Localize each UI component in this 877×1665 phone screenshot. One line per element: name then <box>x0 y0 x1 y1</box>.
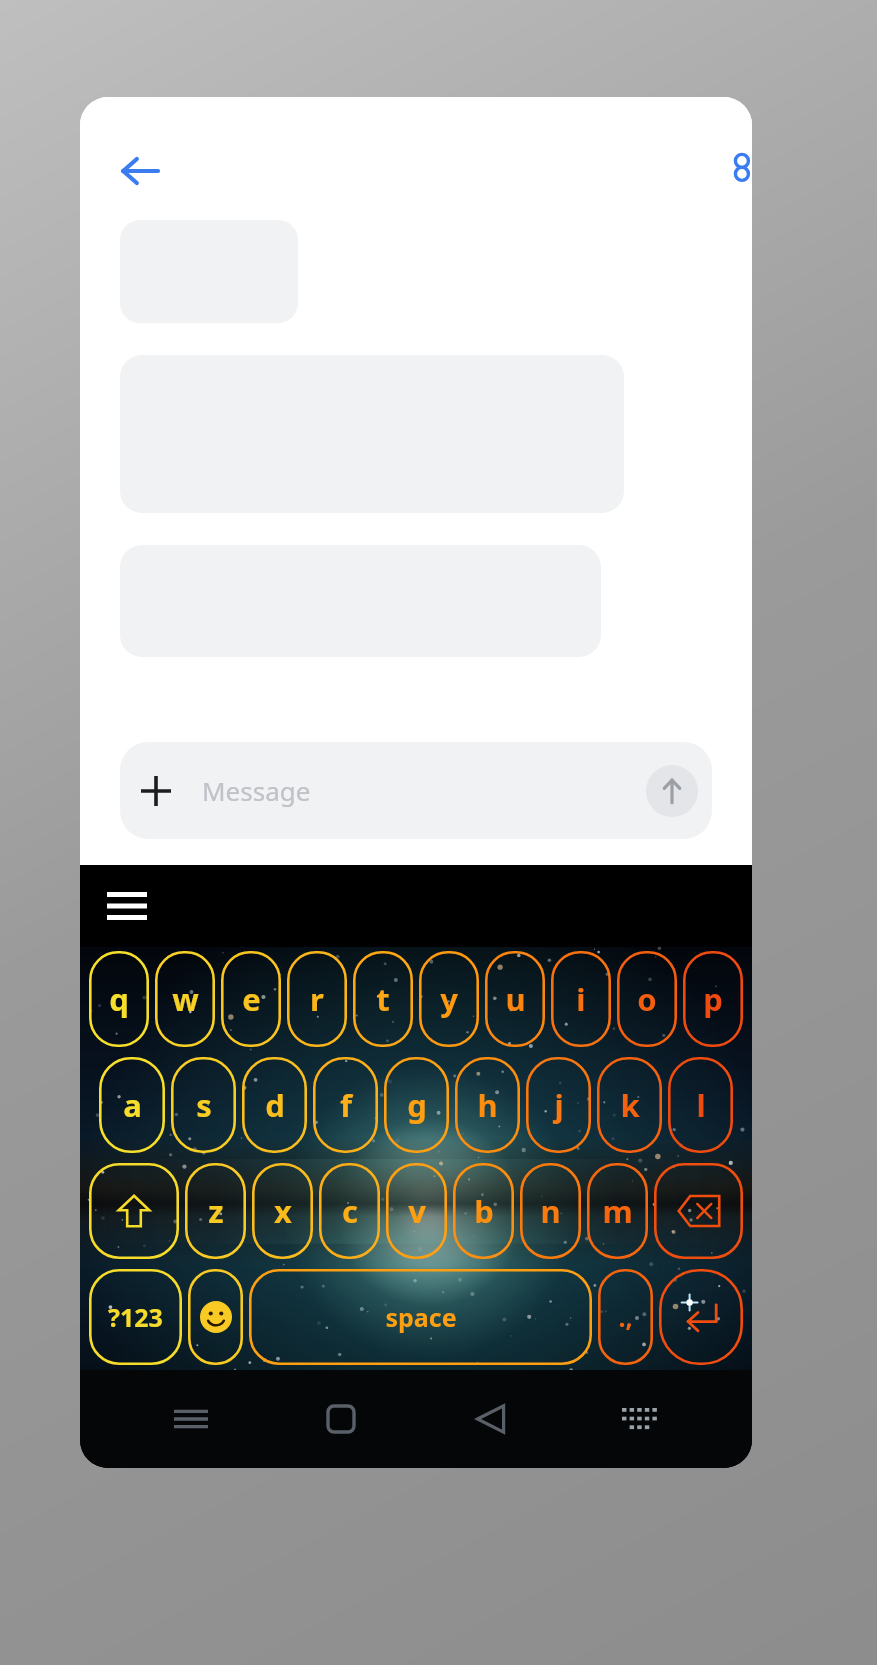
button[interactable]: v <box>386 1163 447 1259</box>
button[interactable]: o <box>617 951 677 1047</box>
staticText: n <box>540 1190 561 1232</box>
staticText: w <box>172 978 199 1020</box>
staticText: q <box>109 978 129 1020</box>
button[interactable]: Switch keyboard <box>566 1370 716 1468</box>
button[interactable]: d <box>242 1057 307 1153</box>
staticText: r <box>310 978 324 1020</box>
button[interactable]: Recents <box>116 1370 266 1468</box>
staticText: b <box>474 1190 494 1232</box>
button[interactable]: Keyboard menu <box>94 873 160 939</box>
button[interactable]: i <box>551 951 611 1047</box>
staticText: Message <box>202 773 311 808</box>
button[interactable]: g <box>384 1057 449 1153</box>
button[interactable]: z <box>185 1163 246 1259</box>
button[interactable]: j <box>526 1057 591 1153</box>
staticText: l <box>696 1084 706 1126</box>
staticText: a <box>123 1084 142 1126</box>
button[interactable]: Back <box>416 1370 566 1468</box>
button[interactable]: Back <box>104 135 176 207</box>
button[interactable]: a <box>99 1057 165 1153</box>
staticText: s <box>196 1084 212 1126</box>
staticText: c <box>342 1190 358 1232</box>
staticText: d <box>265 1084 285 1126</box>
staticText: o <box>637 978 657 1020</box>
button[interactable]: n <box>520 1163 581 1259</box>
button[interactable]: Emoji <box>188 1269 243 1365</box>
button[interactable]: Add attachment <box>120 742 712 839</box>
button[interactable]: b <box>453 1163 514 1259</box>
button[interactable]: y <box>419 951 479 1047</box>
button[interactable]: e <box>221 951 281 1047</box>
button[interactable]: u <box>485 951 545 1047</box>
button[interactable]: Send <box>646 765 698 817</box>
button[interactable]: ., <box>598 1269 653 1365</box>
button[interactable]: m <box>587 1163 648 1259</box>
staticText: u <box>505 978 526 1020</box>
button[interactable]: k <box>597 1057 662 1153</box>
button[interactable]: Enter <box>659 1269 743 1365</box>
staticText: z <box>208 1190 224 1232</box>
button[interactable]: t <box>353 951 413 1047</box>
staticText: g <box>407 1084 427 1126</box>
button[interactable]: r <box>287 951 347 1047</box>
button[interactable]: Backspace <box>654 1163 743 1259</box>
staticText: h <box>477 1084 498 1126</box>
staticText: y <box>440 978 458 1020</box>
button[interactable]: space <box>249 1269 592 1365</box>
button[interactable]: h <box>455 1057 520 1153</box>
button[interactable]: c <box>319 1163 380 1259</box>
staticText: e <box>242 978 261 1020</box>
button[interactable]: l <box>668 1057 733 1153</box>
button[interactable]: More options <box>680 135 752 207</box>
staticText: i <box>576 978 586 1020</box>
staticText: ., <box>618 1300 633 1334</box>
button[interactable]: ?123 <box>89 1269 182 1365</box>
button[interactable]: w <box>155 951 215 1047</box>
button[interactable]: f <box>313 1057 378 1153</box>
staticText: f <box>340 1084 352 1126</box>
button[interactable]: x <box>252 1163 313 1259</box>
staticText: j <box>554 1084 564 1126</box>
staticText: v <box>408 1190 426 1232</box>
button[interactable]: p <box>683 951 743 1047</box>
staticText: ?123 <box>108 1300 163 1334</box>
staticText: m <box>602 1190 633 1232</box>
button[interactable]: Shift <box>89 1163 179 1259</box>
button[interactable]: Add attachment <box>120 755 192 827</box>
button[interactable]: s <box>171 1057 236 1153</box>
staticText: p <box>703 978 723 1020</box>
button[interactable]: q <box>89 951 149 1047</box>
button[interactable]: Home <box>266 1370 416 1468</box>
staticText: t <box>376 978 390 1020</box>
staticText: space <box>385 1300 457 1334</box>
staticText: k <box>620 1084 640 1126</box>
staticText: x <box>274 1190 292 1232</box>
